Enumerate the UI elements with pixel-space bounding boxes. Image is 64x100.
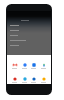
button[interactable]: Share target bbox=[22, 63, 27, 69]
button[interactable]: Share target bbox=[12, 63, 17, 69]
button[interactable]: Share target bbox=[41, 63, 46, 69]
button[interactable]: Share target bbox=[22, 77, 27, 83]
button[interactable]: Share target bbox=[31, 77, 36, 83]
button[interactable]: Share target bbox=[41, 77, 46, 83]
button[interactable]: Share target bbox=[12, 77, 17, 83]
button[interactable]: Share target bbox=[31, 63, 36, 69]
